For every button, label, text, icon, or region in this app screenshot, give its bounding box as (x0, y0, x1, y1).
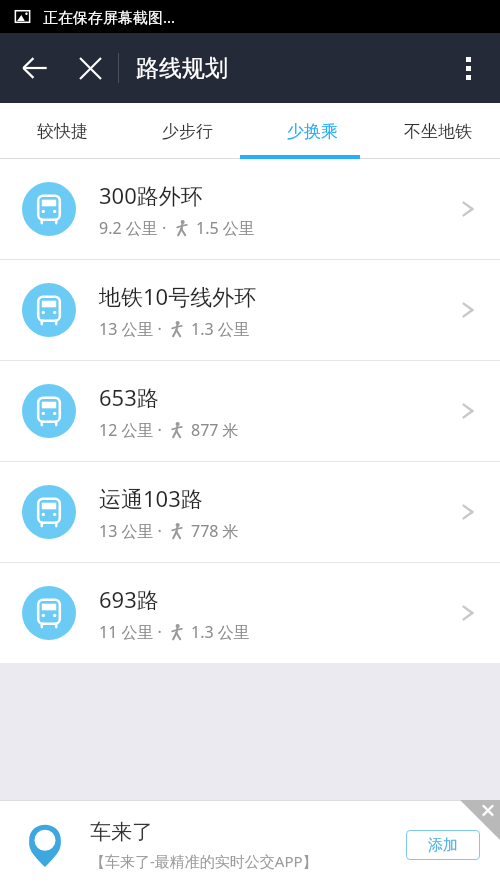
staticText: 1.5 公里 (196, 217, 255, 239)
button[interactable]: 地铁10号线外环 (0, 260, 500, 360)
button[interactable]: 不坐地铁 (375, 103, 500, 159)
staticText: 不坐地铁 (404, 121, 472, 142)
button[interactable]: 运通103路 (0, 462, 500, 562)
staticText: 13 公里 · (99, 318, 162, 340)
staticText: 地铁10号线外环 (99, 281, 257, 311)
staticText: 少换乘 (287, 121, 338, 142)
button[interactable]: 较快捷 (0, 103, 125, 159)
staticText: 【车来了-最精准的实时公交APP】 (90, 851, 318, 871)
staticText: 少步行 (162, 121, 213, 142)
staticText: 13 公里 · (99, 520, 162, 542)
staticText: 车来了 (90, 819, 153, 845)
button[interactable]: 少步行 (125, 103, 250, 159)
button[interactable]: Close ad (460, 800, 500, 840)
staticText: 添加 (428, 836, 458, 855)
button[interactable]: Back (8, 41, 62, 95)
staticText: 路线规划 (136, 54, 228, 83)
staticText: 11 公里 · (99, 621, 162, 643)
staticText: 12 公里 · (99, 419, 162, 441)
staticText: 9.2 公里 · (99, 217, 167, 239)
staticText: 877 米 (191, 419, 239, 441)
button[interactable]: 添加 (406, 830, 480, 860)
staticText: 1.3 公里 (191, 318, 250, 340)
staticText: 较快捷 (37, 121, 88, 142)
staticText: 693路 (99, 584, 159, 614)
button[interactable]: 300路外环 (0, 159, 500, 259)
button[interactable]: 653路 (0, 361, 500, 461)
button[interactable]: 少换乘 (250, 103, 375, 159)
staticText: 778 米 (191, 520, 239, 542)
staticText: 正在保存屏幕截图... (43, 7, 176, 27)
staticText: 653路 (99, 382, 159, 412)
staticText: 运通103路 (99, 483, 203, 513)
button[interactable]: 693路 (0, 563, 500, 663)
staticText: 300路外环 (99, 180, 203, 210)
button[interactable]: Close (66, 44, 114, 92)
button[interactable]: More options (442, 42, 494, 94)
staticText: 1.3 公里 (191, 621, 250, 643)
